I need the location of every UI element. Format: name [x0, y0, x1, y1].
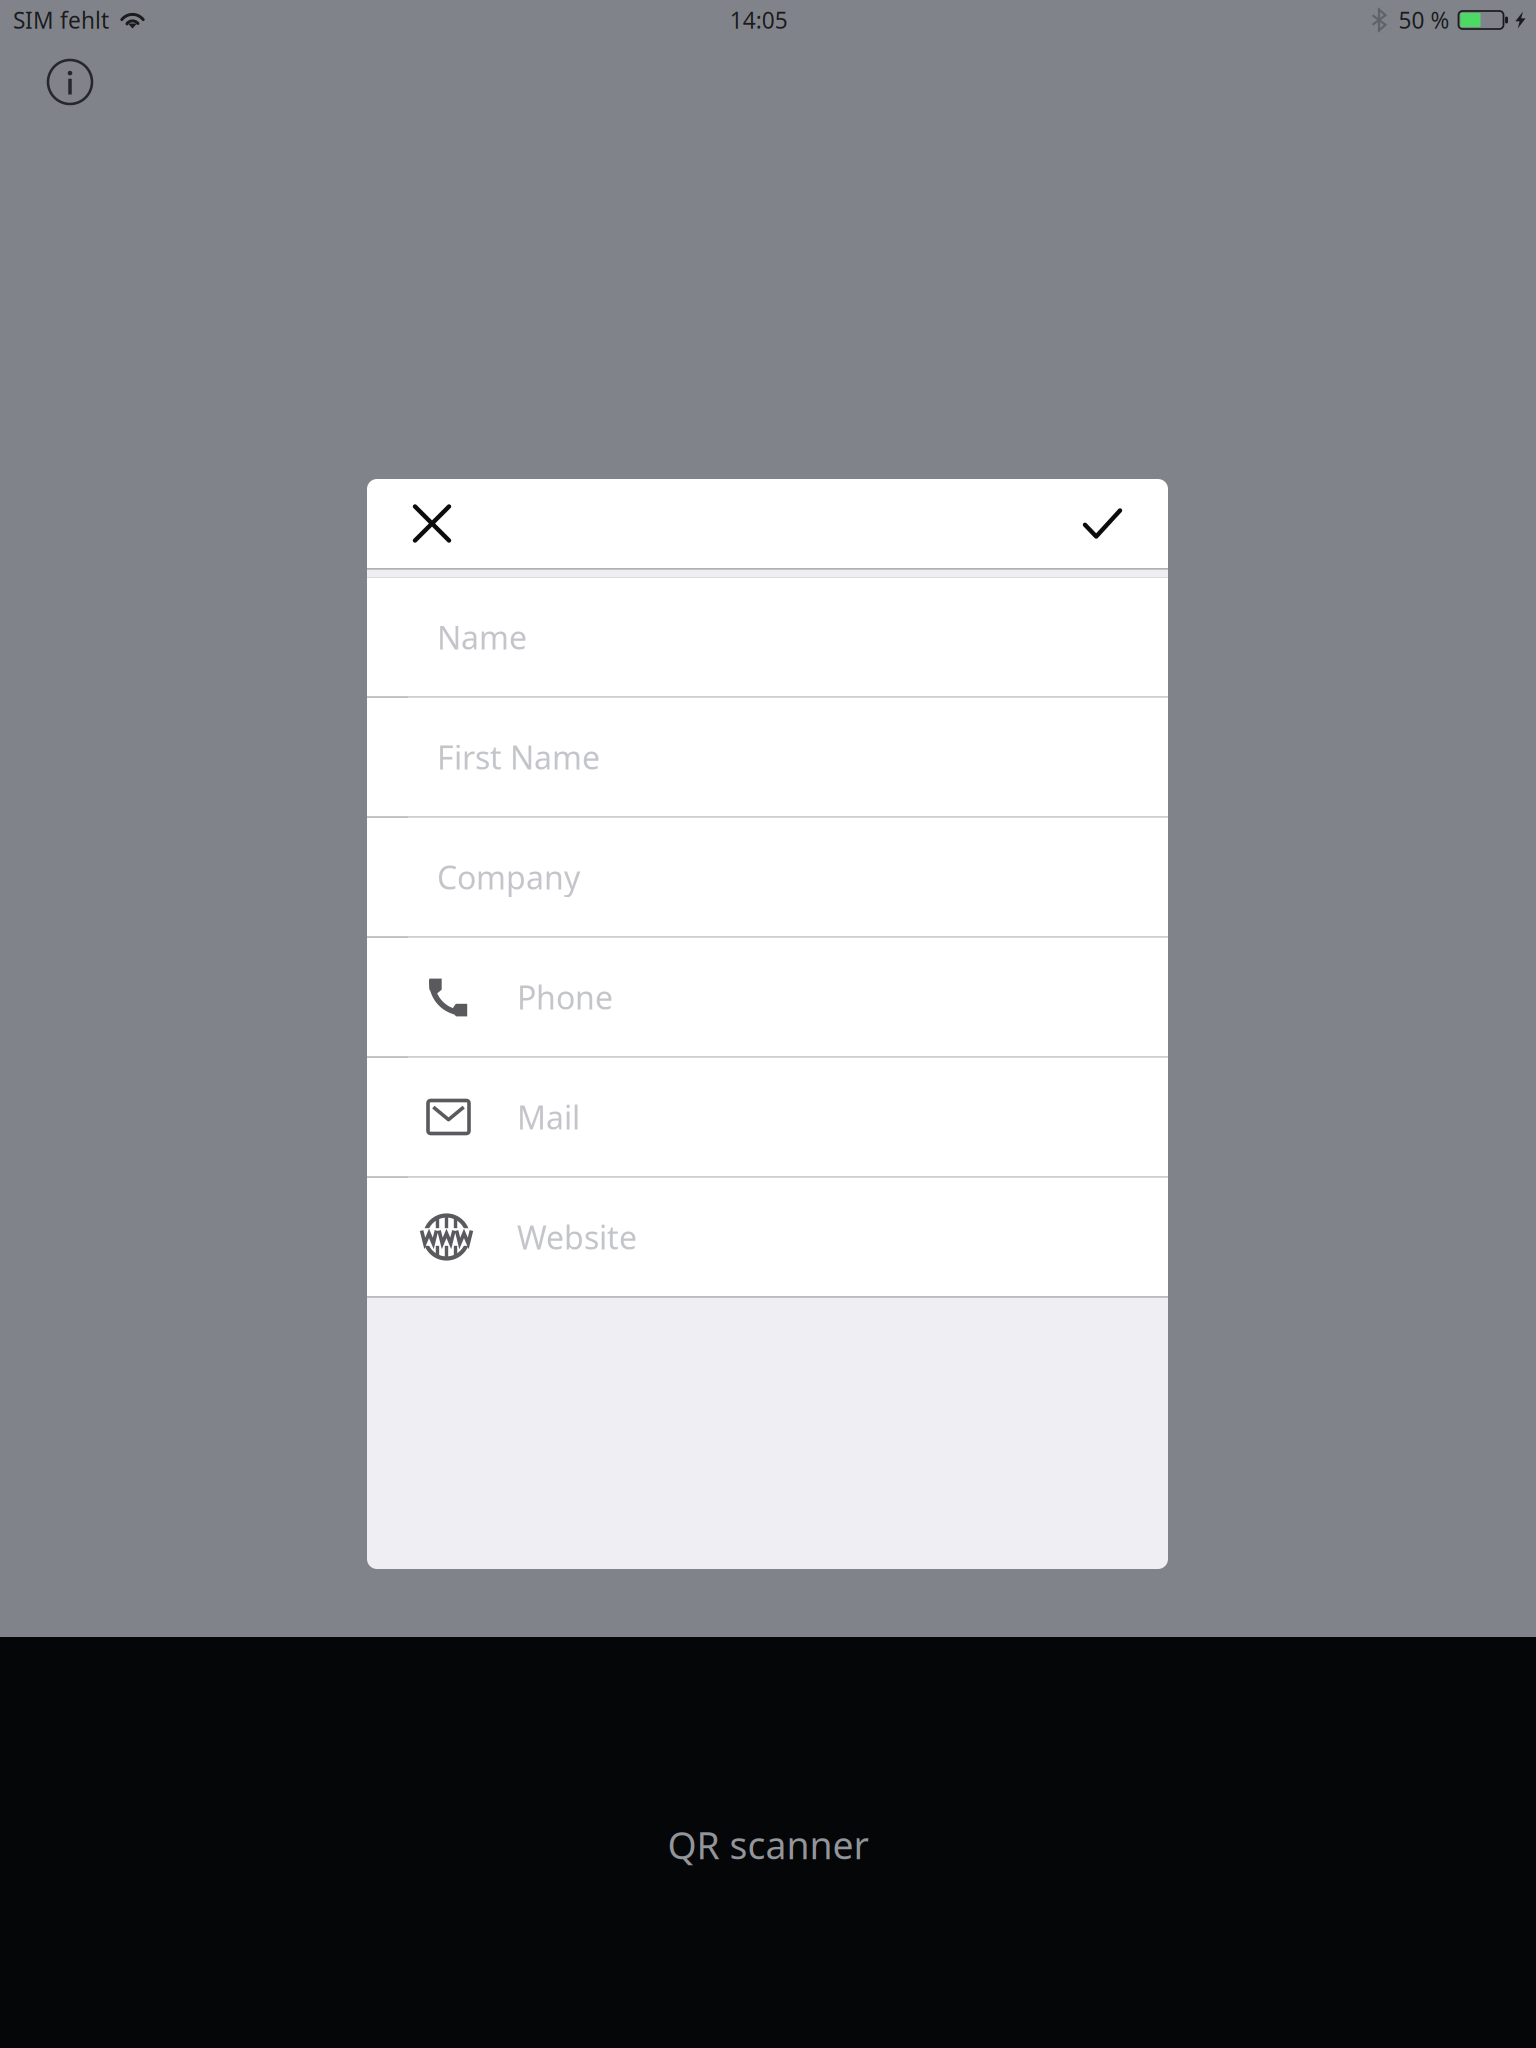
staticText: SIM fehlt [13, 5, 109, 35]
staticText: Name [437, 616, 527, 658]
staticText: Phone [517, 976, 613, 1018]
staticText: QR scanner [667, 1820, 868, 1870]
button[interactable]: First Name [367, 697, 1168, 816]
button[interactable]: Name [367, 577, 1168, 696]
button[interactable]: Save [1085, 510, 1120, 536]
staticText: 50 % [1398, 5, 1449, 35]
staticText: Website [517, 1216, 637, 1258]
button[interactable]: Website [367, 1177, 1168, 1296]
staticText: Company [437, 856, 580, 898]
button[interactable]: Phone [367, 937, 1168, 1056]
staticText: Mail [517, 1096, 580, 1138]
button[interactable]: Mail [367, 1057, 1168, 1176]
button[interactable]: Company [367, 817, 1168, 936]
button[interactable]: Cancel [415, 506, 449, 540]
staticText: 14:05 [730, 5, 788, 35]
staticText: First Name [437, 736, 600, 778]
button[interactable]: Info [48, 60, 92, 104]
